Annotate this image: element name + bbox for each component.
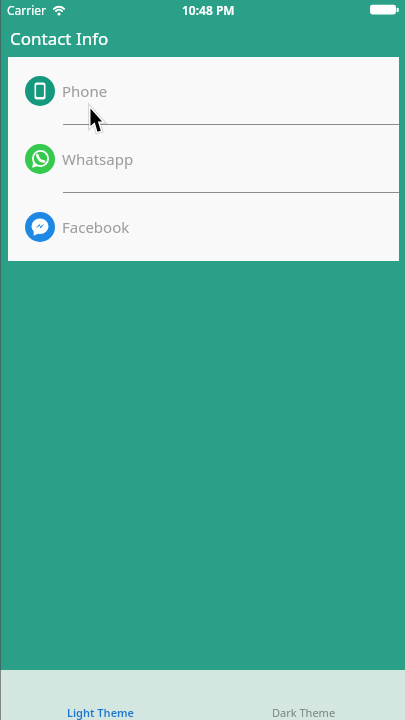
staticText: Whatsapp — [62, 149, 134, 169]
staticText: Light Theme — [67, 705, 135, 720]
button[interactable]: Light Theme — [0, 670, 202, 720]
staticText: Contact Info — [10, 27, 109, 50]
staticText: Dark Theme — [272, 705, 336, 720]
button[interactable]: Dark Theme — [202, 670, 405, 720]
button[interactable]: Facebook — [8, 193, 399, 261]
button[interactable]: Phone — [8, 57, 399, 125]
staticText: Carrier — [7, 2, 47, 18]
button[interactable]: Whatsapp — [8, 125, 399, 193]
staticText: 10:48 PM — [182, 2, 235, 18]
staticText: Facebook — [62, 217, 130, 237]
staticText: Phone — [62, 81, 108, 101]
